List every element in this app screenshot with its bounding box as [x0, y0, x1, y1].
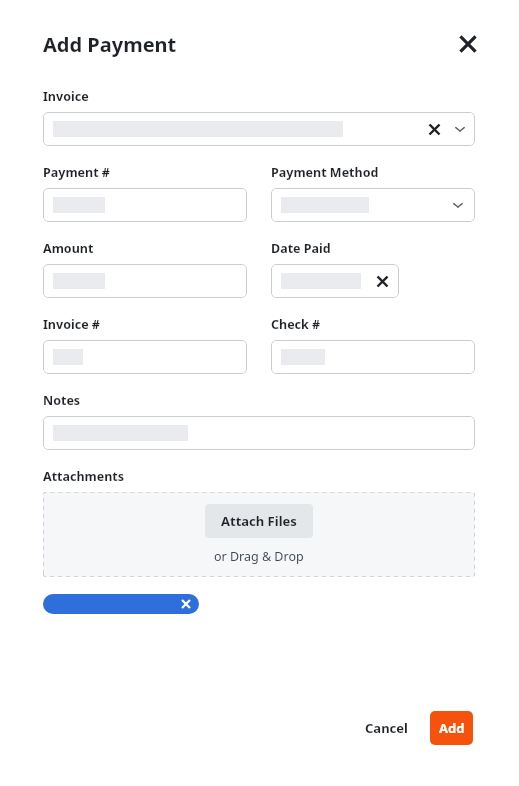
button[interactable]: Open payment method list — [451, 198, 465, 212]
button[interactable]: Attach Files — [205, 504, 313, 538]
staticText: Amount — [43, 240, 94, 257]
staticText: Invoice — [43, 88, 89, 105]
staticText: Check # — [271, 316, 321, 333]
button[interactable]: Clear invoice — [424, 119, 444, 139]
staticText: Invoice # — [43, 316, 100, 333]
button[interactable]: Clear invoice — [43, 112, 475, 146]
button[interactable] — [271, 340, 475, 374]
button[interactable]: Clear date paid — [271, 264, 399, 298]
button[interactable] — [43, 416, 475, 450]
button[interactable] — [43, 264, 247, 298]
button[interactable]: Attach Files — [43, 492, 475, 577]
staticText: Attach Files — [221, 512, 297, 530]
staticText: Add — [439, 719, 465, 737]
button[interactable]: Remove attachment — [179, 597, 193, 611]
staticText: or Drag & Drop — [214, 548, 304, 565]
staticText: Cancel — [365, 719, 408, 737]
button[interactable] — [43, 188, 247, 222]
button[interactable]: Cancel — [355, 711, 418, 745]
staticText: Payment Method — [271, 164, 379, 181]
button[interactable]: Open invoice list — [453, 122, 467, 136]
button[interactable]: Remove attachment — [43, 594, 199, 614]
staticText: Attachments — [43, 468, 125, 485]
staticText: Notes — [43, 392, 81, 409]
staticText: Date Paid — [271, 240, 331, 257]
button[interactable] — [43, 340, 247, 374]
button[interactable]: Open payment method list — [271, 188, 475, 222]
button[interactable]: Add — [430, 711, 473, 745]
button[interactable]: Close — [451, 27, 485, 61]
staticText: Payment # — [43, 164, 110, 181]
staticText: Add Payment — [43, 31, 177, 58]
button[interactable]: Clear date paid — [372, 271, 392, 291]
